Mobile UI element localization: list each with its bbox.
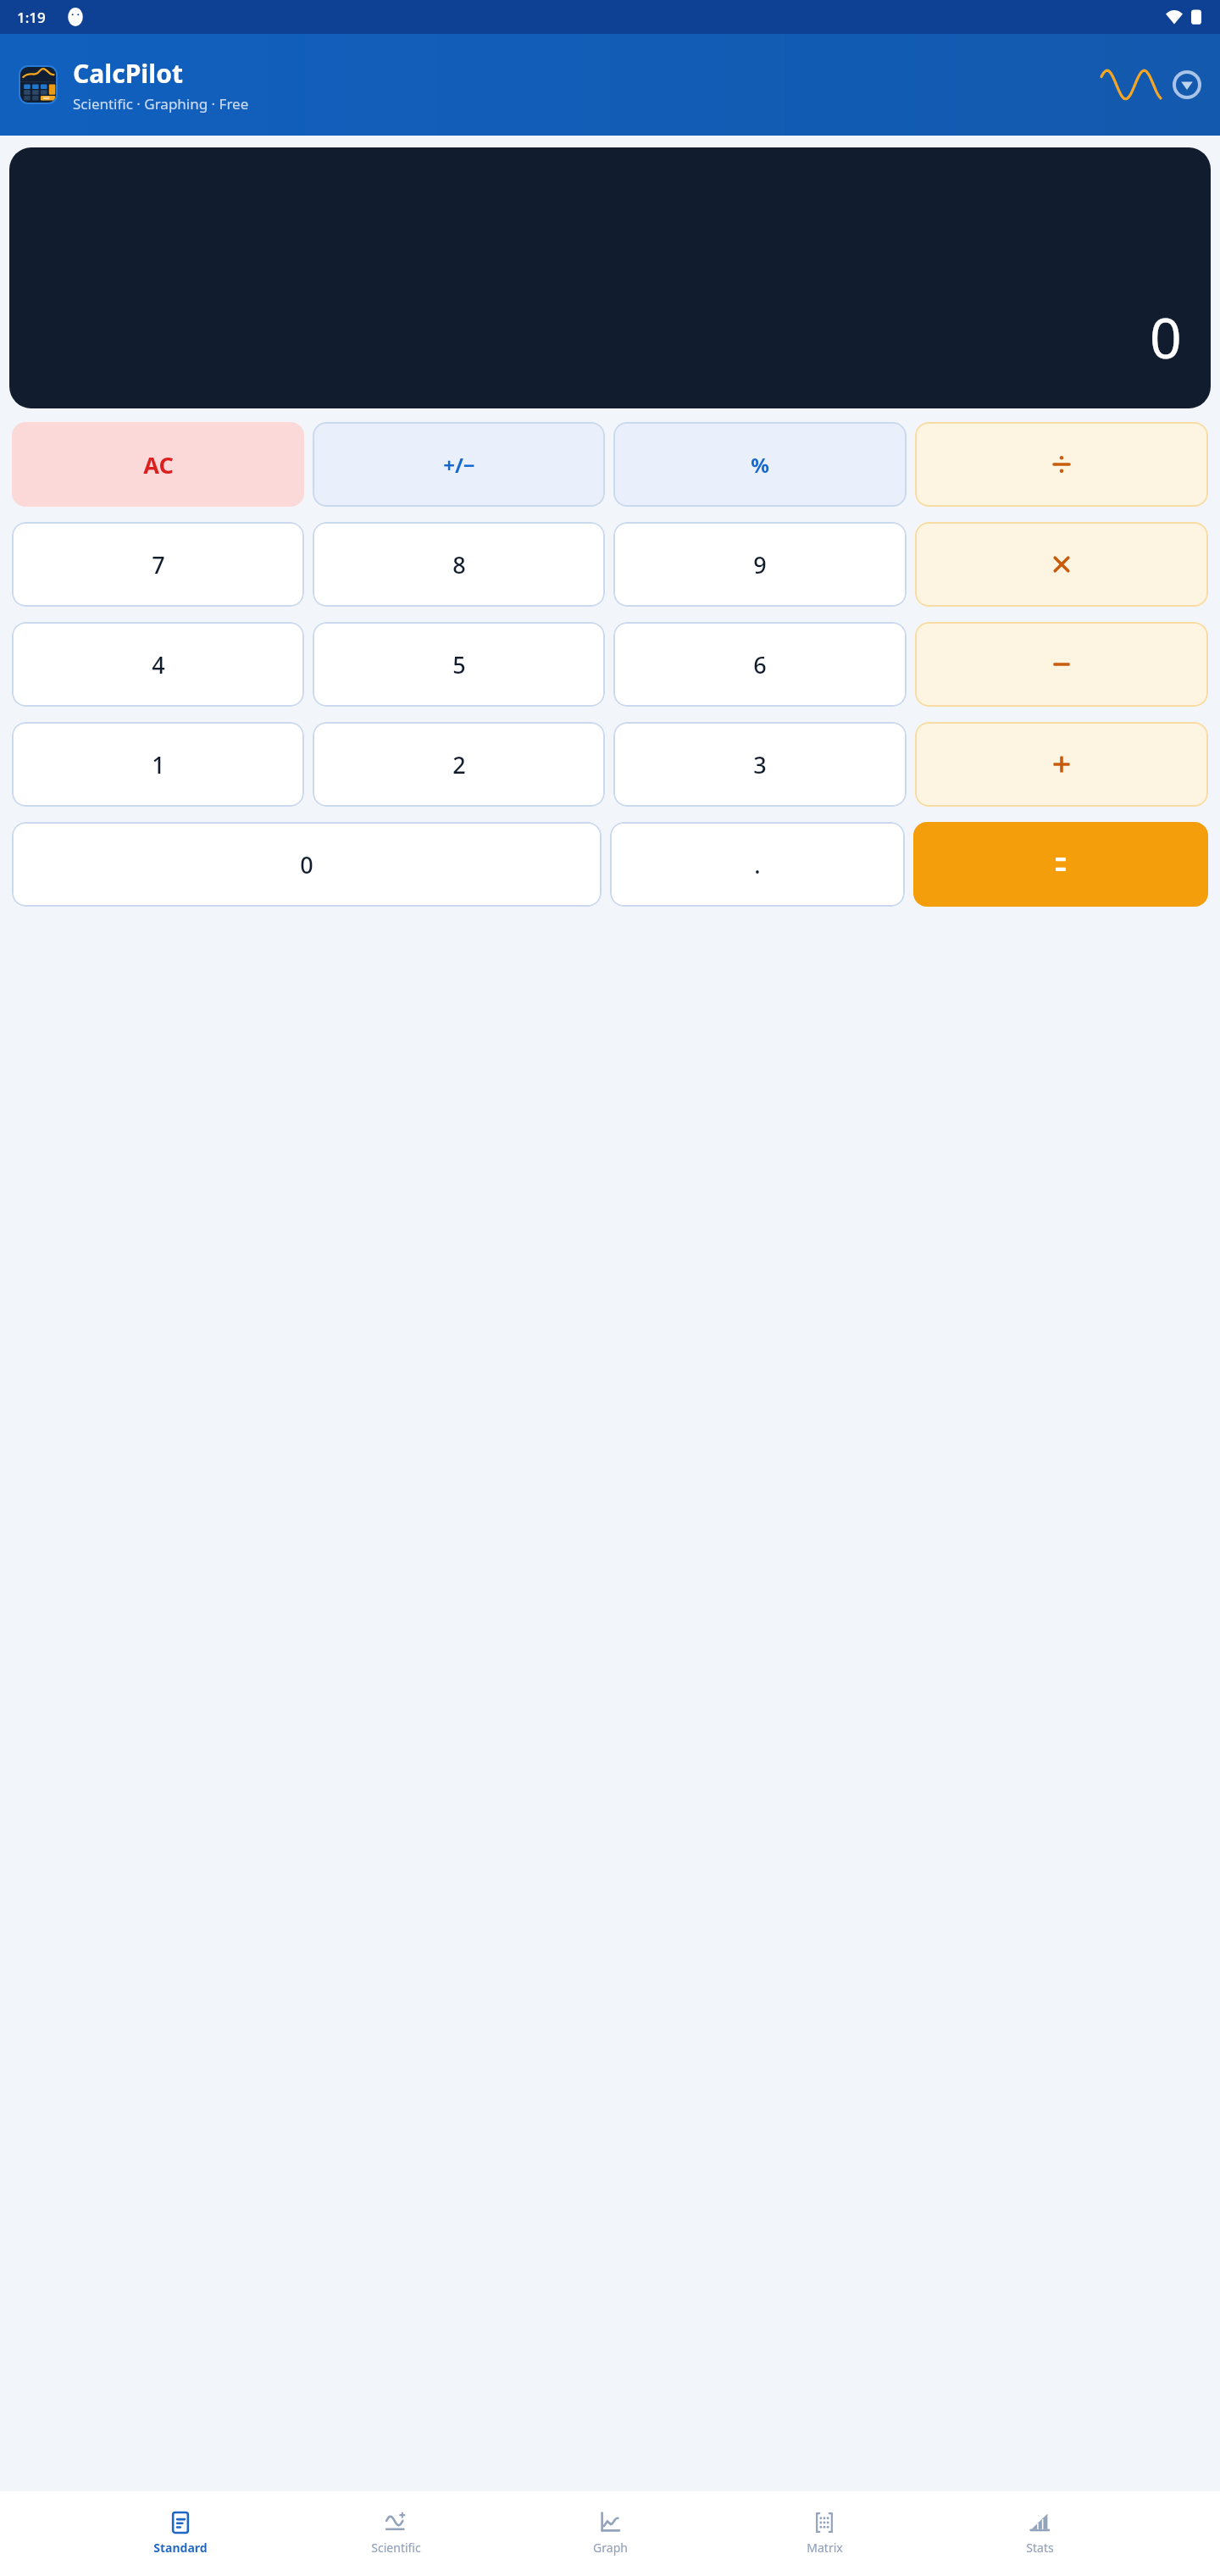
button[interactable]: + [915,722,1208,807]
button[interactable]: Graph [576,2491,644,2576]
button[interactable]: 3 [613,722,907,807]
button[interactable]: 5 [313,622,605,707]
button[interactable]: × [915,522,1208,607]
staticText: Stats [1026,2540,1054,2556]
staticText: Graph [593,2540,628,2556]
staticText: 2 [452,749,466,780]
staticText: 4 [152,649,165,680]
staticText: 8 [452,549,466,580]
button[interactable]: 7 [12,522,304,607]
button[interactable]: 2 [313,722,605,807]
staticText: Matrix [807,2540,843,2556]
button[interactable]: = [913,822,1208,907]
staticText: 0 [300,849,313,880]
button[interactable]: AC [12,422,304,507]
button[interactable]: 6 [613,622,907,707]
button[interactable]: Matrix [790,2491,858,2576]
button[interactable]: Standard [147,2491,214,2576]
button[interactable]: % [613,422,907,507]
staticText: 9 [753,549,767,580]
button[interactable]: 0 [9,147,1211,408]
staticText: Standard [153,2540,208,2556]
staticText: 1 [152,749,165,780]
staticText: 7 [152,549,165,580]
staticText: 6 [753,649,767,680]
staticText: 0 [1150,298,1182,375]
staticText: Scientific [371,2540,421,2556]
button[interactable]: 8 [313,522,605,607]
button[interactable]: 9 [613,522,907,607]
staticText: % [751,451,769,479]
staticText: 3 [753,749,767,780]
button[interactable]: 4 [12,622,304,707]
staticText: 5 [452,649,466,680]
staticText: 1:19 [17,8,46,27]
button[interactable]: Scientific [362,2491,430,2576]
staticText: +/− [443,451,475,479]
button[interactable]: 0 [12,822,602,907]
button[interactable]: ÷ [915,422,1208,507]
staticText: Scientific · Graphing · Free [73,94,249,114]
staticText: AC [143,449,174,480]
button[interactable]: Stats [1006,2491,1073,2576]
other: Waveform [1101,68,1161,102]
button[interactable]: . [610,822,905,907]
button[interactable]: 1 [12,722,304,807]
staticText: . [754,849,761,880]
button[interactable]: Collapse [1173,70,1201,99]
staticText: CalcPilot [73,56,183,91]
button[interactable]: − [915,622,1208,707]
button[interactable]: +/− [313,422,605,507]
